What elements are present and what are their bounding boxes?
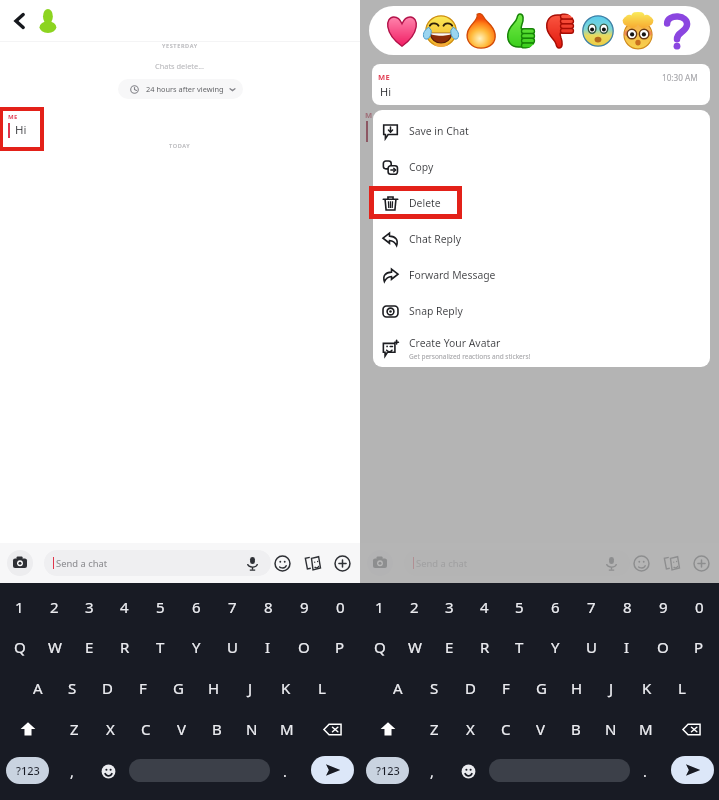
button[interactable]: B — [199, 709, 234, 749]
button[interactable]: N — [593, 709, 628, 749]
button[interactable]: Question reaction — [658, 12, 696, 50]
button[interactable]: Thumbs down reaction — [540, 12, 578, 50]
button[interactable]: K — [629, 668, 664, 708]
button[interactable]: F — [488, 668, 524, 708]
button[interactable]: 3 — [432, 587, 467, 627]
button[interactable]: X — [92, 709, 128, 749]
button[interactable]: H — [196, 668, 232, 708]
button[interactable]: ME — [372, 64, 710, 105]
button[interactable]: O — [645, 627, 681, 667]
button[interactable]: Cameos — [663, 555, 680, 572]
button[interactable]: Space — [129, 759, 270, 782]
button[interactable]: C — [128, 709, 164, 749]
button[interactable]: Forward Message — [373, 257, 710, 293]
button[interactable]: . — [632, 756, 658, 786]
button[interactable]: S — [55, 668, 90, 708]
button[interactable]: ?123 — [6, 757, 49, 784]
button[interactable]: A — [20, 668, 55, 708]
button[interactable]: F — [125, 668, 160, 708]
button[interactable]: Send a chat — [404, 550, 630, 576]
button[interactable]: Fire reaction — [462, 12, 500, 50]
button[interactable]: Snap Reply — [373, 293, 710, 329]
button[interactable]: 6 — [537, 587, 573, 627]
button[interactable]: Send — [311, 756, 354, 784]
button[interactable]: Y — [178, 627, 214, 667]
button[interactable]: Emoji — [454, 756, 482, 786]
button[interactable]: D — [90, 668, 125, 708]
button[interactable]: X — [452, 709, 488, 749]
button[interactable]: 5 — [142, 587, 178, 627]
button[interactable]: P — [681, 627, 717, 667]
button[interactable]: Save in Chat — [373, 113, 710, 149]
button[interactable]: 7 — [214, 587, 250, 627]
button[interactable]: J — [232, 668, 268, 708]
button[interactable]: J — [594, 668, 629, 708]
button[interactable]: Z — [56, 709, 92, 749]
button[interactable]: G — [524, 668, 559, 708]
button[interactable]: M — [628, 709, 663, 749]
button[interactable]: B — [558, 709, 593, 749]
button[interactable]: Copy — [373, 149, 710, 185]
button[interactable]: Stickers — [274, 555, 291, 572]
button[interactable]: Backspace — [304, 709, 360, 749]
button[interactable]: 4 — [107, 587, 142, 627]
button[interactable]: , — [58, 756, 86, 786]
button[interactable]: Thumbs up reaction — [501, 12, 539, 50]
button[interactable]: Space — [489, 759, 630, 782]
button[interactable]: Voice note — [604, 556, 619, 571]
button[interactable]: K — [268, 668, 304, 708]
button[interactable]: Camera — [367, 550, 393, 576]
button[interactable]: W — [37, 627, 72, 667]
button[interactable]: E — [72, 627, 107, 667]
button[interactable]: 6 — [178, 587, 214, 627]
button[interactable]: O — [286, 627, 322, 667]
button[interactable]: Camera — [7, 550, 33, 576]
button[interactable]: C — [488, 709, 523, 749]
button[interactable]: 1 — [362, 587, 397, 627]
button[interactable]: More options — [334, 555, 351, 572]
button[interactable]: ?123 — [366, 757, 409, 784]
button[interactable]: M — [269, 709, 304, 749]
button[interactable]: U — [214, 627, 250, 667]
button[interactable]: Profile — [34, 6, 63, 35]
button[interactable]: H — [559, 668, 594, 708]
button[interactable]: Shift — [360, 709, 416, 749]
button[interactable]: Voice note — [245, 556, 260, 571]
button[interactable]: U — [573, 627, 609, 667]
button[interactable]: W — [397, 627, 432, 667]
button[interactable]: 8 — [609, 587, 645, 627]
button[interactable]: Backspace — [663, 709, 719, 749]
button[interactable]: P — [322, 627, 358, 667]
button[interactable]: N — [234, 709, 269, 749]
button[interactable]: 9 — [645, 587, 681, 627]
button[interactable]: Chat Reply — [373, 221, 710, 257]
button[interactable]: Laughing reaction — [422, 12, 460, 50]
button[interactable]: Heart reaction — [383, 12, 421, 50]
button[interactable]: R — [107, 627, 142, 667]
button[interactable]: 2 — [397, 587, 432, 627]
button[interactable]: V — [164, 709, 199, 749]
button[interactable]: 24 hours after viewing — [118, 79, 243, 99]
button[interactable]: A — [380, 668, 416, 708]
button[interactable]: Q — [362, 627, 397, 667]
button[interactable]: Back — [10, 11, 30, 31]
button[interactable]: V — [523, 709, 558, 749]
button[interactable]: Emoji — [94, 756, 122, 786]
button[interactable]: R — [467, 627, 502, 667]
button[interactable]: S — [416, 668, 452, 708]
button[interactable]: 9 — [286, 587, 322, 627]
button[interactable]: Send — [671, 756, 714, 784]
button[interactable]: Q — [2, 627, 37, 667]
button[interactable]: 0 — [322, 587, 358, 627]
button[interactable]: I — [609, 627, 645, 667]
button[interactable]: E — [432, 627, 467, 667]
button[interactable]: Create Your Avatar — [373, 331, 710, 365]
button[interactable]: Shift — [0, 709, 56, 749]
button[interactable]: L — [664, 668, 699, 708]
button[interactable]: 3 — [72, 587, 107, 627]
button[interactable]: 2 — [37, 587, 72, 627]
button[interactable]: D — [452, 668, 488, 708]
button[interactable]: . — [272, 756, 298, 786]
button[interactable]: Send a chat — [44, 550, 271, 576]
button[interactable]: 8 — [250, 587, 286, 627]
